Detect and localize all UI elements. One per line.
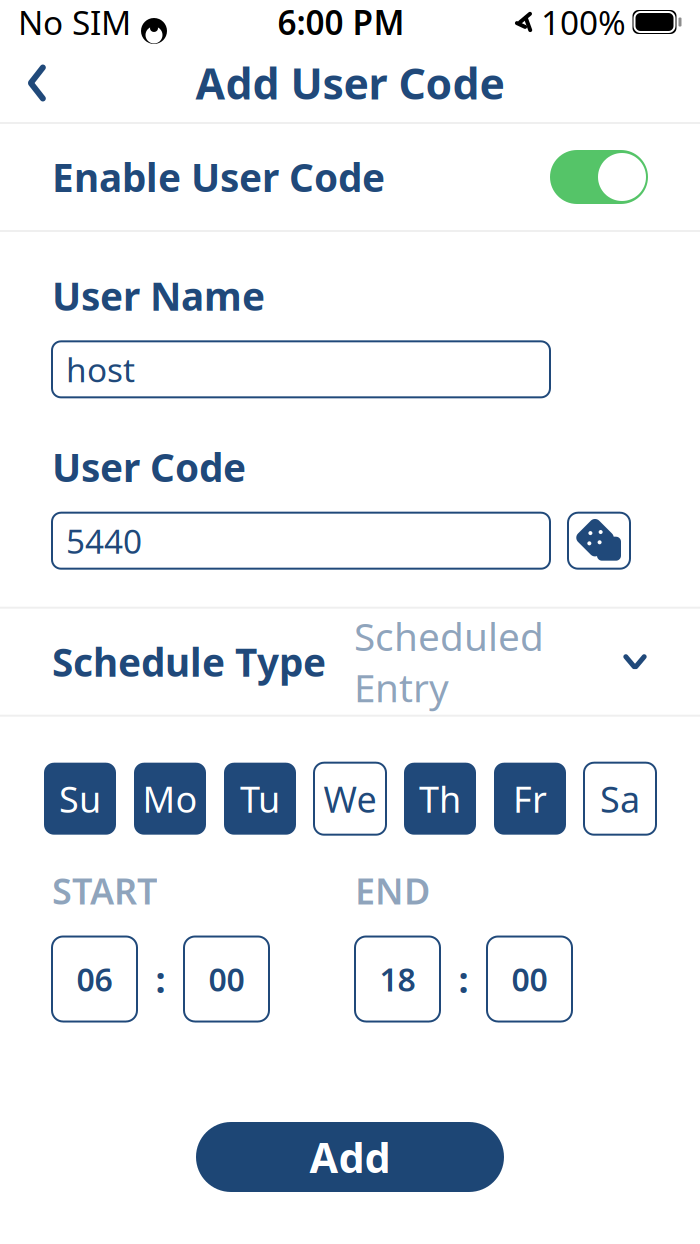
- staticText: :: [458, 955, 468, 1003]
- button[interactable]: Mo: [134, 763, 206, 835]
- staticText: 5440: [66, 519, 142, 563]
- staticText: Add: [309, 1130, 390, 1184]
- staticText: 06: [76, 958, 112, 1000]
- button[interactable]: Th: [404, 763, 476, 835]
- staticText: 18: [379, 958, 415, 1000]
- staticText: 00: [511, 958, 547, 1000]
- button[interactable]: Fr: [494, 763, 566, 835]
- button[interactable]: Tu: [224, 763, 296, 835]
- staticText: :: [155, 955, 165, 1003]
- staticText: Su: [59, 775, 101, 823]
- button[interactable]: Enable User Code: [0, 124, 700, 230]
- staticText: Tu: [240, 775, 280, 823]
- button[interactable]: 18: [355, 936, 440, 1021]
- button[interactable]: 00: [487, 936, 572, 1021]
- button[interactable]: Back: [0, 53, 52, 113]
- button[interactable]: 00: [184, 936, 269, 1021]
- staticText: Fr: [513, 775, 547, 823]
- button[interactable]: host: [52, 341, 550, 397]
- staticText: No SIM: [18, 0, 131, 44]
- staticText: Schedule Type: [52, 636, 326, 687]
- button[interactable]: Add: [196, 1122, 504, 1192]
- staticText: User Code: [52, 441, 246, 493]
- staticText: Mo: [142, 775, 197, 823]
- staticText: We: [323, 775, 376, 823]
- button[interactable]: We: [314, 763, 386, 835]
- staticText: 00: [208, 958, 244, 1000]
- staticText: Add User Code: [195, 55, 504, 111]
- staticText: host: [66, 347, 135, 391]
- button[interactable]: 5440: [52, 513, 550, 569]
- button[interactable]: Generate random code: [568, 513, 630, 569]
- staticText: Sa: [600, 775, 640, 823]
- staticText: User Name: [52, 270, 265, 321]
- button[interactable]: 06: [52, 936, 137, 1021]
- button[interactable]: Schedule Type: [0, 609, 700, 715]
- staticText: END: [355, 867, 430, 914]
- staticText: Th: [419, 775, 461, 823]
- staticText: 100%: [541, 0, 626, 44]
- button[interactable]: Su: [44, 763, 116, 835]
- staticText: Enable User Code: [52, 151, 385, 203]
- button[interactable]: Sa: [584, 763, 656, 835]
- staticText: 6:00 PM: [277, 0, 404, 44]
- staticText: START: [52, 867, 157, 914]
- staticText: Scheduled Entry: [354, 610, 544, 713]
